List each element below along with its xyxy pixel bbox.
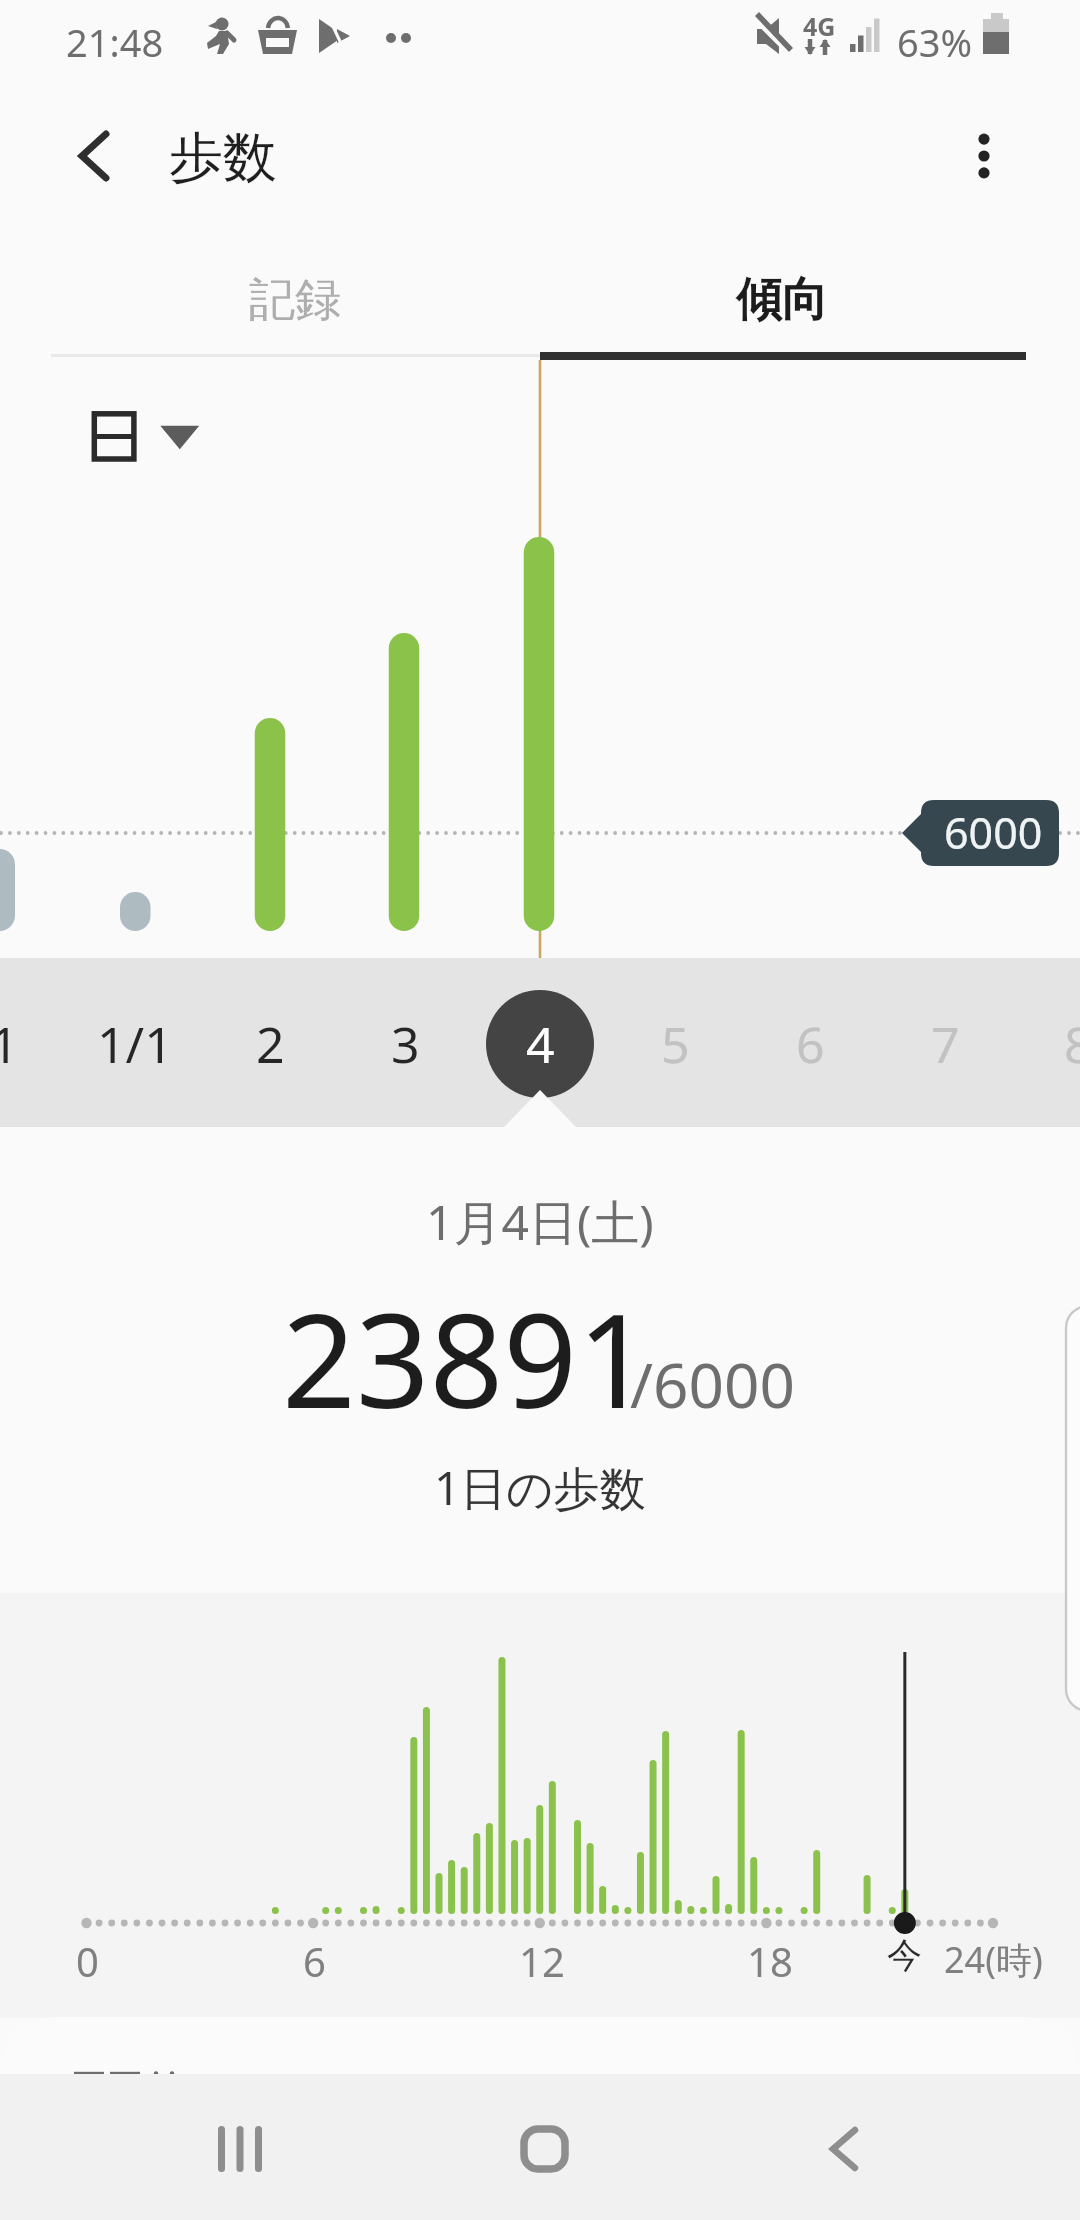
staticText: 4 <box>526 1010 555 1078</box>
staticText: 12 <box>519 1934 565 1988</box>
button[interactable]: 傾向 <box>538 248 1026 352</box>
button[interactable]: 2 <box>210 984 330 1104</box>
staticText: 0 <box>76 1934 99 1988</box>
staticText: 24(時) <box>944 1935 1043 1984</box>
button[interactable]: 1 <box>0 984 64 1104</box>
staticText: 6000 <box>944 803 1043 862</box>
button[interactable]: Back <box>54 116 134 196</box>
staticText: 今 <box>887 1933 922 1977</box>
button[interactable]: Period: day <box>76 398 222 476</box>
button[interactable]: 6 <box>750 984 870 1104</box>
staticText: 2 <box>256 1010 285 1078</box>
button[interactable]: More options <box>944 116 1024 196</box>
staticText: 4G <box>803 9 836 43</box>
staticText: 1 <box>0 1010 19 1078</box>
button[interactable]: 4 <box>480 984 600 1104</box>
staticText: 3 <box>391 1010 420 1078</box>
button[interactable]: 1/1 <box>75 984 195 1104</box>
staticText: 1/1 <box>97 1010 173 1078</box>
staticText: 18 <box>747 1934 793 1988</box>
staticText: 5 <box>661 1010 690 1078</box>
staticText: 1月4日(土) <box>426 1189 654 1255</box>
staticText: 6 <box>796 1010 825 1078</box>
button[interactable]: 5 <box>615 984 735 1104</box>
staticText: 21:48 <box>66 16 164 68</box>
staticText: 傾向 <box>736 271 828 329</box>
button[interactable]: 3 <box>345 984 465 1104</box>
staticText: 1日の歩数 <box>434 1456 646 1519</box>
staticText: 歩数 <box>169 124 277 192</box>
button[interactable]: Back <box>764 2076 924 2220</box>
staticText: 7 <box>931 1010 960 1078</box>
button[interactable]: Home <box>464 2076 624 2220</box>
staticText: /6000 <box>630 1342 795 1426</box>
button[interactable]: 記録 <box>51 248 538 352</box>
button[interactable]: 8 <box>1018 984 1080 1104</box>
staticText: 23891 <box>282 1270 651 1446</box>
staticText: 記録 <box>249 271 341 329</box>
button[interactable]: Recent apps <box>160 2076 320 2220</box>
button[interactable]: 7 <box>885 984 1005 1104</box>
staticText: 6 <box>303 1934 326 1988</box>
button[interactable]: Hourly step chart <box>0 1593 1080 2018</box>
staticText: 63% <box>897 16 973 68</box>
staticText: 8 <box>1064 1010 1080 1078</box>
